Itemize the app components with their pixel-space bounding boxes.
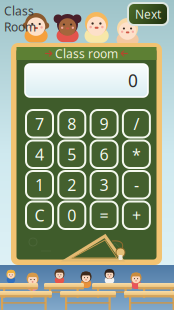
button[interactable]: 7 (26, 110, 53, 137)
button[interactable]: / (123, 110, 150, 137)
button[interactable]: = (91, 201, 118, 229)
staticText: 9 (100, 113, 109, 134)
button[interactable]: + (123, 201, 150, 229)
staticText: - (134, 174, 139, 195)
staticText: 4 (35, 144, 44, 165)
button[interactable]: * (123, 140, 150, 168)
staticText: C (34, 205, 44, 226)
button[interactable]: 4 (26, 140, 53, 168)
staticText: = (100, 205, 109, 226)
button[interactable]: C (26, 201, 53, 229)
button[interactable]: 5 (58, 140, 85, 168)
staticText: 0 (128, 69, 138, 92)
staticText: 0 (67, 205, 76, 226)
button[interactable]: - (123, 171, 150, 198)
staticText: / (133, 113, 139, 134)
button[interactable]: 3 (91, 171, 118, 198)
button[interactable]: Next (128, 3, 168, 25)
staticText: 6 (100, 144, 109, 165)
button[interactable]: 0 (58, 201, 85, 229)
staticText: 8 (67, 113, 76, 134)
button[interactable]: 2 (58, 171, 85, 198)
staticText: 7 (35, 113, 44, 134)
staticText: 1 (35, 174, 44, 195)
staticText: 3 (100, 174, 109, 195)
button[interactable]: 6 (91, 140, 118, 168)
staticText: * (132, 144, 141, 165)
staticText: 2 (67, 174, 76, 195)
button[interactable]: 9 (91, 110, 118, 137)
button[interactable]: 8 (58, 110, 85, 137)
staticText: Class Room (4, 3, 36, 35)
staticText: + (132, 205, 141, 226)
staticText: Class room (55, 45, 118, 61)
staticText: Next (135, 6, 161, 22)
button[interactable]: 1 (26, 171, 53, 198)
staticText: 5 (67, 144, 76, 165)
